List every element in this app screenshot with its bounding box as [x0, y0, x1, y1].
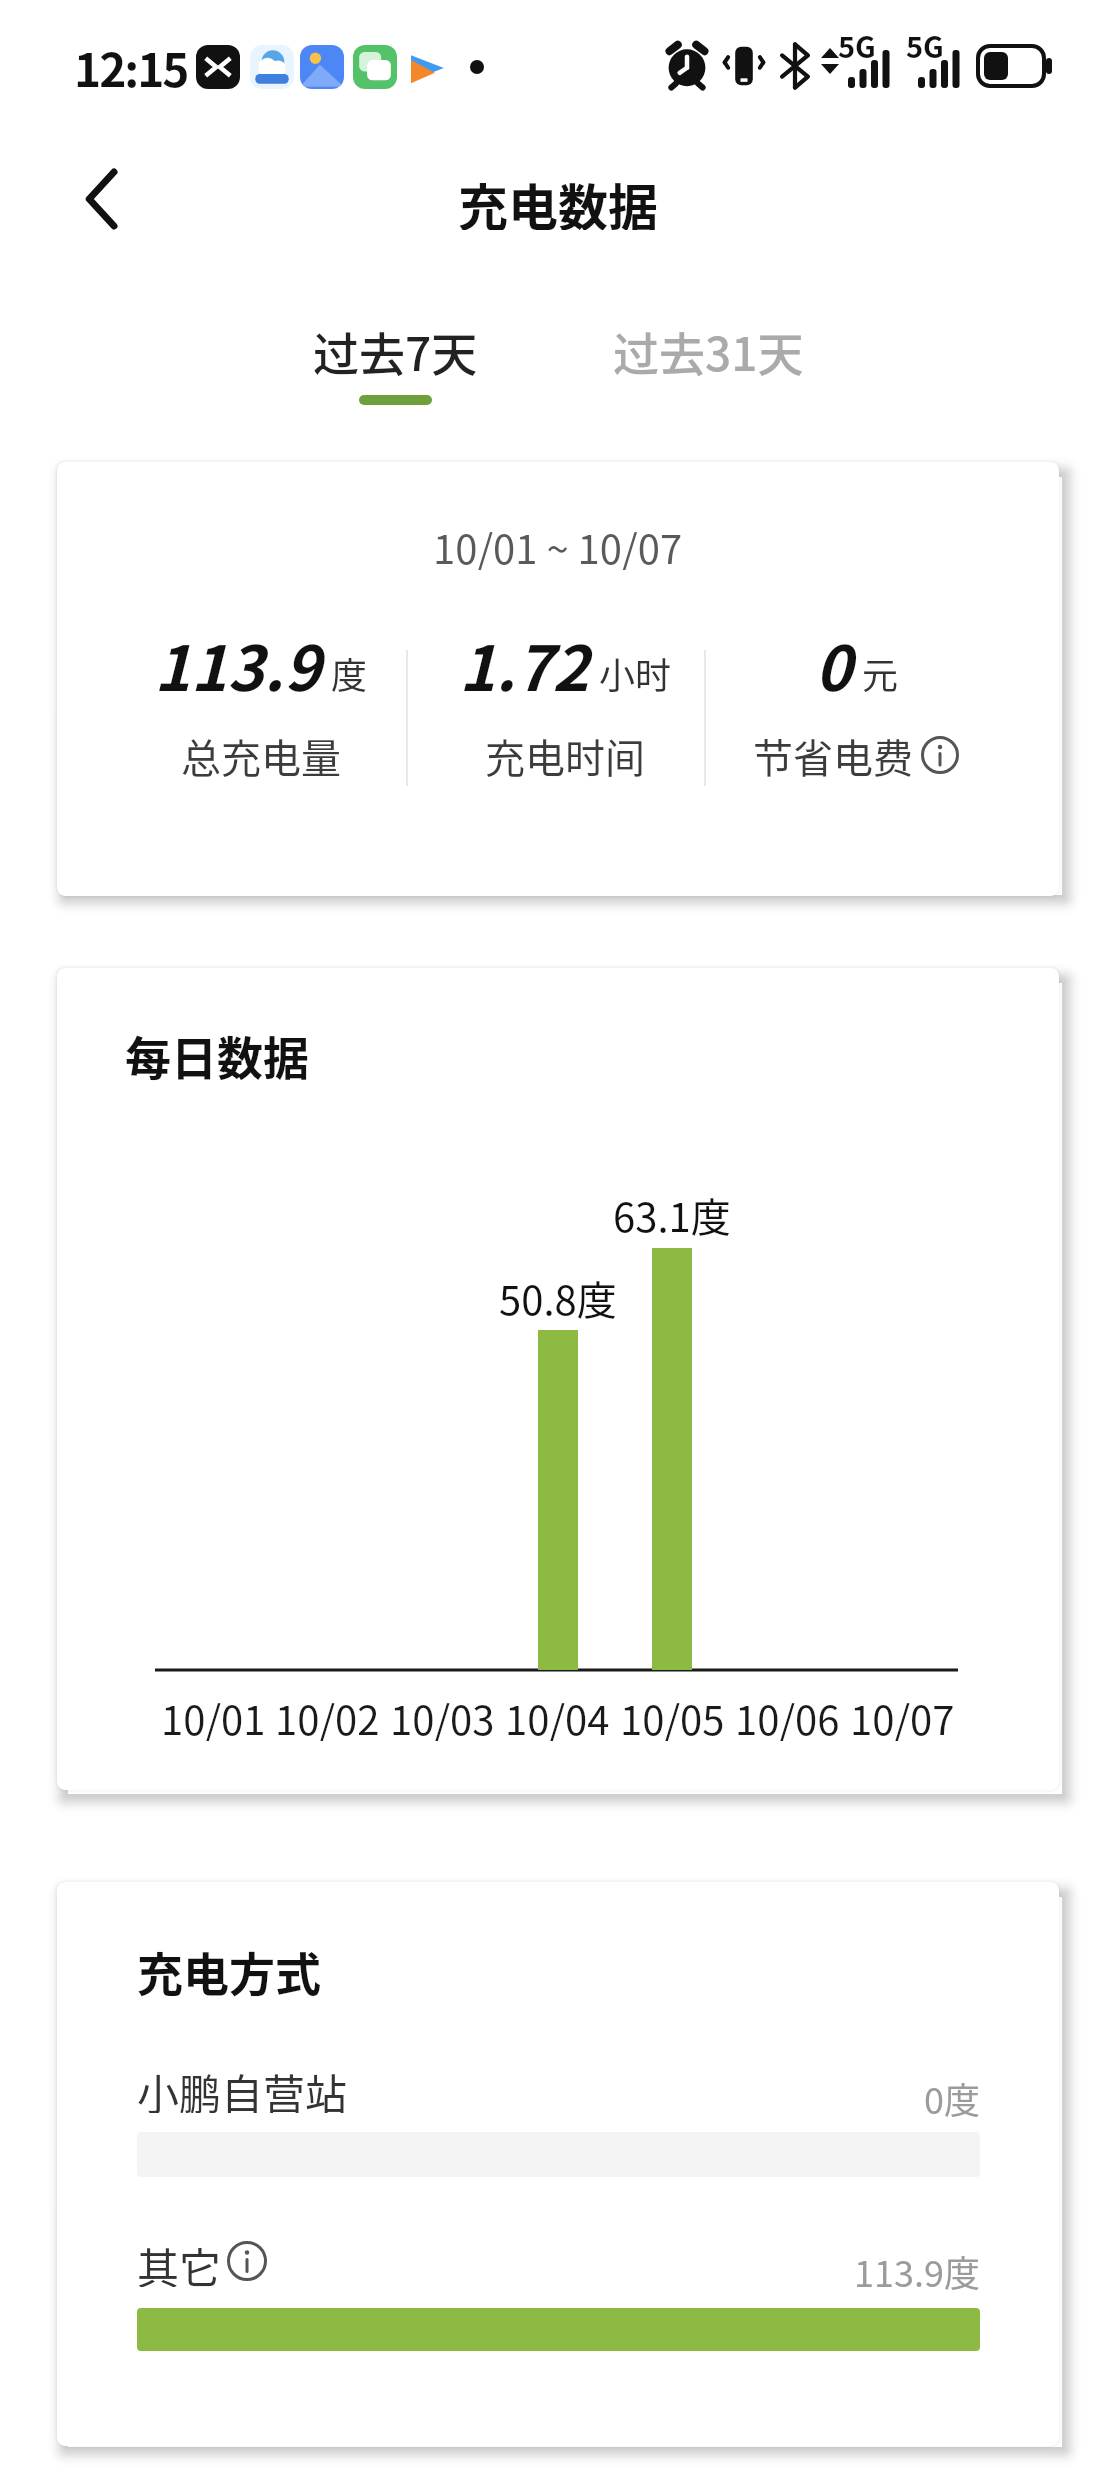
- staticText: 10/01 ~ 10/07: [433, 518, 683, 570]
- staticText: 元: [862, 647, 899, 699]
- button[interactable]: 过去7天: [290, 316, 500, 416]
- button[interactable]: [921, 736, 959, 774]
- staticText: 10/03: [390, 1689, 495, 1741]
- staticText: 0度: [924, 2072, 980, 2120]
- staticText: 每日数据: [125, 1022, 309, 1082]
- staticText: 过去31天: [613, 318, 804, 378]
- staticText: 小时: [599, 647, 672, 699]
- staticText: 63.1度: [613, 1186, 731, 1238]
- button[interactable]: 过去31天: [600, 318, 816, 382]
- button[interactable]: [227, 2241, 267, 2281]
- staticText: 0: [815, 619, 852, 709]
- staticText: 充电数据: [458, 168, 658, 230]
- staticText: 其它: [137, 2235, 222, 2287]
- staticText: 过去7天: [313, 318, 478, 378]
- staticText: 10/02: [275, 1689, 380, 1741]
- staticText: 10/04: [505, 1689, 610, 1741]
- staticText: 总充电量: [181, 727, 341, 779]
- staticText: 10/07: [850, 1689, 955, 1741]
- staticText: 10/05: [620, 1689, 725, 1741]
- staticText: 10/06: [735, 1689, 840, 1741]
- staticText: 113.9度: [854, 2245, 980, 2293]
- staticText: 12:15: [74, 34, 188, 94]
- staticText: 10/01: [161, 1689, 266, 1741]
- staticText: 充电时间: [485, 727, 645, 779]
- button[interactable]: [82, 170, 122, 228]
- staticText: 节省电费: [753, 727, 913, 779]
- staticText: 小鹏自营站: [137, 2061, 348, 2113]
- staticText: 50.8度: [499, 1269, 617, 1321]
- staticText: 5G: [838, 24, 876, 64]
- staticText: 113.9: [154, 619, 321, 709]
- staticText: 1.72: [459, 619, 589, 709]
- staticText: 充电方式: [137, 1938, 321, 1998]
- staticText: 5G: [906, 24, 944, 64]
- staticText: 度: [331, 647, 368, 699]
